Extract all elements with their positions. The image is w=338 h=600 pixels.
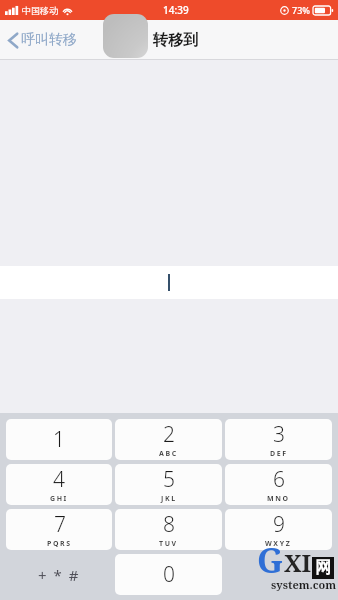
staticText: 8 — [163, 510, 175, 539]
staticText: 14:39 — [163, 3, 189, 17]
staticText: system.com — [271, 577, 337, 592]
staticText: 2 — [163, 420, 175, 449]
staticText: 中国移动 — [22, 5, 58, 16]
button[interactable]: 3 — [225, 419, 332, 460]
staticText: 7 — [54, 510, 66, 539]
button[interactable]: 9 — [225, 509, 332, 550]
staticText: 0 — [163, 560, 175, 589]
staticText: 6 — [273, 465, 285, 494]
staticText: 5 — [163, 465, 175, 494]
staticText: 网 — [315, 558, 331, 578]
button[interactable]: 2 — [115, 419, 222, 460]
staticText: 73% — [292, 4, 310, 16]
staticText: ABC — [159, 449, 178, 459]
staticText: DEF — [270, 449, 288, 459]
button[interactable]: 0 — [115, 554, 222, 595]
staticText: 4 — [53, 465, 65, 494]
button[interactable]: 7 — [6, 509, 112, 550]
button[interactable]: 呼叫转移 — [0, 27, 85, 53]
button[interactable]: 8 — [115, 509, 222, 550]
button[interactable]: 6 — [225, 464, 332, 505]
button[interactable]: 1 — [6, 419, 112, 460]
staticText: 1 — [53, 425, 65, 454]
staticText: 转移到 — [153, 31, 198, 50]
staticText: WXYZ — [265, 539, 292, 549]
staticText: + * # — [38, 565, 80, 585]
button[interactable] — [0, 266, 338, 299]
staticText: TUV — [159, 539, 178, 549]
staticText: 3 — [273, 420, 285, 449]
staticText: 9 — [273, 510, 285, 539]
staticText: 呼叫转移 — [21, 31, 77, 49]
button[interactable]: + * # — [6, 554, 112, 595]
button[interactable]: 5 — [115, 464, 222, 505]
staticText: G — [257, 537, 284, 583]
button[interactable]: 4 — [6, 464, 112, 505]
staticText: XI — [284, 546, 312, 579]
staticText: PQRS — [47, 539, 72, 549]
staticText: JKL — [161, 494, 177, 504]
staticText: GHI — [50, 494, 68, 504]
staticText: MNO — [267, 494, 290, 504]
